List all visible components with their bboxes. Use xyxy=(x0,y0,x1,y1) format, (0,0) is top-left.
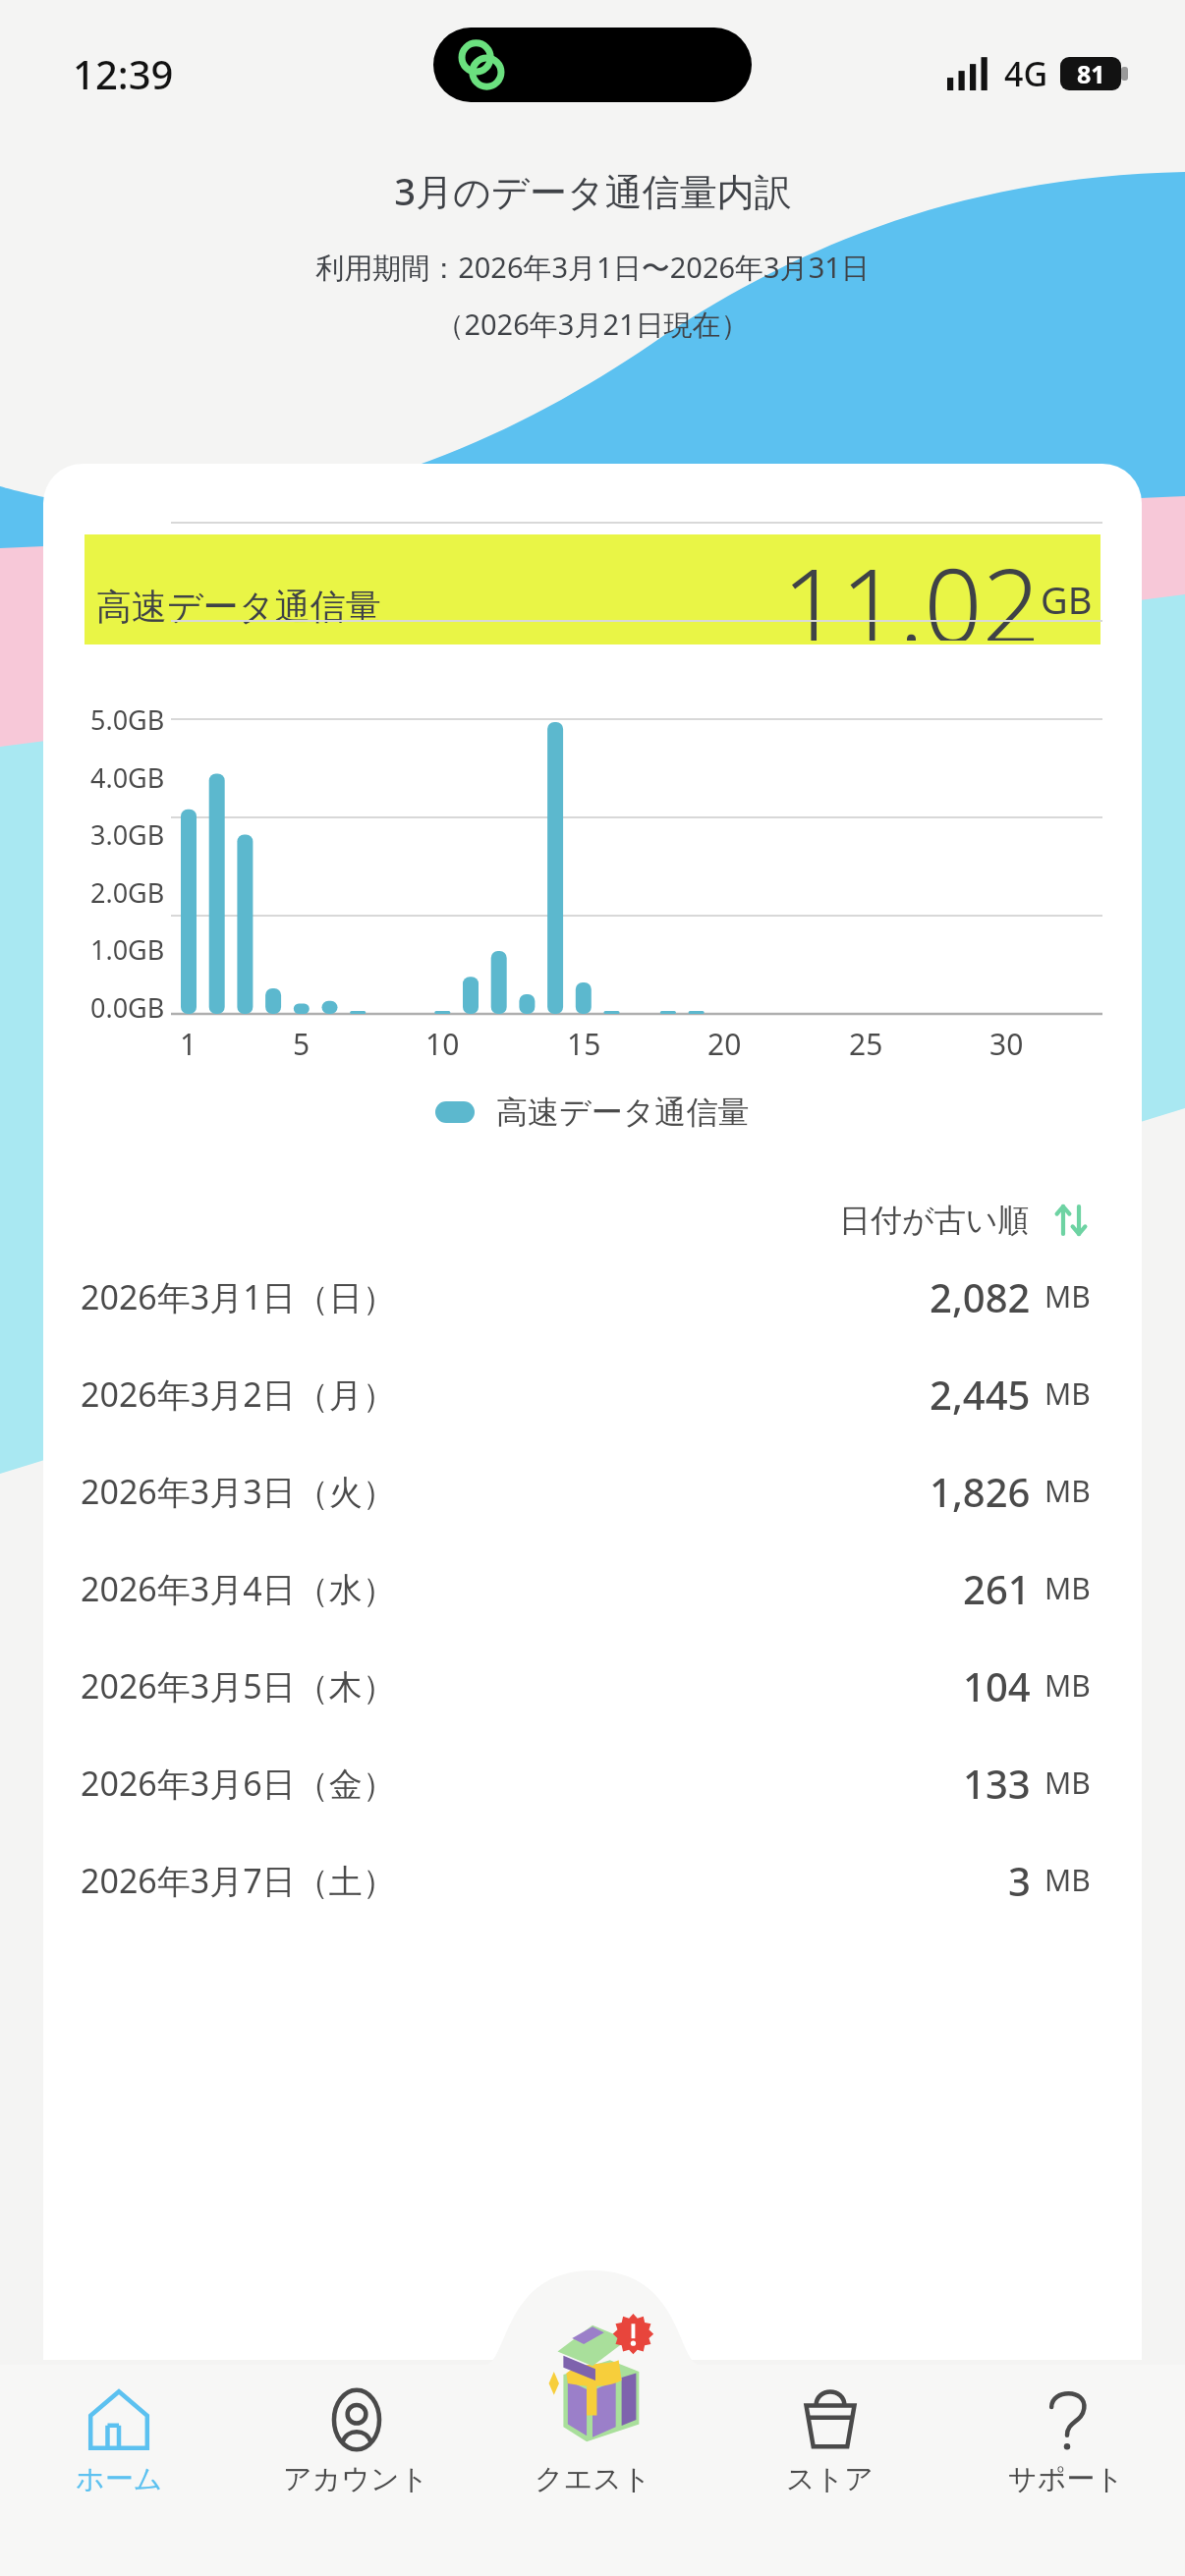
staticText: MB xyxy=(1044,1373,1091,1414)
staticText: 2026年3月3日（火） xyxy=(81,1469,396,1514)
staticText: 2026年3月4日（水） xyxy=(81,1566,396,1611)
staticText: MB xyxy=(1044,1276,1091,1316)
staticText: 261 xyxy=(963,1562,1031,1615)
staticText: MB xyxy=(1044,1860,1091,1900)
staticText: 133 xyxy=(963,1757,1031,1810)
button[interactable]: 2026年3月5日（木） xyxy=(43,1637,1142,1734)
button[interactable]: ホーム xyxy=(0,2379,238,2503)
staticText: 日付が古い順 xyxy=(839,1201,1030,1240)
staticText: サポート xyxy=(1008,2461,1125,2497)
staticText: 15 xyxy=(567,1024,601,1064)
staticText: 20 xyxy=(707,1024,742,1064)
staticText: MB xyxy=(1044,1471,1091,1511)
staticText: 5 xyxy=(293,1024,310,1064)
staticText: 4.0GB xyxy=(90,759,165,796)
button[interactable]: ストア xyxy=(711,2379,948,2503)
button[interactable]: サポート xyxy=(948,2379,1185,2503)
staticText: 高速データ通信量 xyxy=(496,1092,750,1132)
staticText: 3 xyxy=(1008,1854,1031,1907)
other: 並び替え xyxy=(1051,1201,1091,1240)
staticText: 2026年3月1日（日） xyxy=(81,1274,396,1319)
staticText: 10 xyxy=(425,1024,460,1064)
staticText: 1 xyxy=(180,1024,197,1064)
staticText: 3.0GB xyxy=(90,816,165,853)
staticText: 4G xyxy=(1004,51,1048,96)
staticText: MB xyxy=(1044,1763,1091,1803)
staticText: MB xyxy=(1044,1665,1091,1706)
staticText: 30 xyxy=(989,1024,1024,1064)
staticText: クエスト xyxy=(535,2461,651,2497)
staticText: 11.02 xyxy=(782,534,1041,641)
staticText: 利用期間：2026年3月1日〜2026年3月31日 xyxy=(315,248,870,287)
staticText: 2026年3月7日（土） xyxy=(81,1858,396,1903)
staticText: ストア xyxy=(786,2461,875,2497)
staticText: アカウント xyxy=(283,2461,429,2497)
staticText: 1,826 xyxy=(930,1465,1031,1518)
staticText: 2,082 xyxy=(930,1270,1031,1323)
staticText: 81 xyxy=(1077,57,1105,90)
button[interactable]: アカウント xyxy=(238,2379,475,2503)
button[interactable]: クエスト xyxy=(520,2308,665,2453)
staticText: ホーム xyxy=(76,2461,163,2497)
staticText: 1.0GB xyxy=(90,931,165,968)
staticText: 0.0GB xyxy=(90,989,165,1026)
button[interactable]: 2026年3月4日（水） xyxy=(43,1540,1142,1637)
staticText: 2026年3月6日（金） xyxy=(81,1761,396,1806)
staticText: 2026年3月2日（月） xyxy=(81,1372,396,1417)
staticText: 高速データ通信量 xyxy=(96,585,381,629)
button[interactable]: 2026年3月7日（土） xyxy=(43,1831,1142,1929)
button[interactable]: クエスト xyxy=(475,2379,711,2503)
button[interactable]: 2026年3月1日（日） xyxy=(43,1248,1142,1345)
staticText: GB xyxy=(1041,574,1093,625)
staticText: （2026年3月21日現在） xyxy=(435,305,750,344)
staticText: 3月のデータ通信量内訳 xyxy=(394,165,792,216)
button[interactable]: 2026年3月2日（月） xyxy=(43,1345,1142,1442)
button[interactable]: 2026年3月6日（金） xyxy=(43,1734,1142,1831)
staticText: 12:39 xyxy=(73,47,174,100)
staticText: 25 xyxy=(849,1024,883,1064)
staticText: 2.0GB xyxy=(90,874,165,911)
staticText: 2,445 xyxy=(930,1368,1031,1421)
button[interactable]: 2026年3月3日（火） xyxy=(43,1442,1142,1540)
staticText: 2026年3月5日（木） xyxy=(81,1663,396,1708)
staticText: 104 xyxy=(963,1659,1031,1712)
staticText: MB xyxy=(1044,1568,1091,1608)
staticText: 5.0GB xyxy=(90,701,165,738)
button[interactable]: 日付が古い順 xyxy=(43,1193,1142,1248)
